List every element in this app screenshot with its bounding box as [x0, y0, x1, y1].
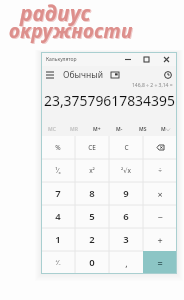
button[interactable]: Maximize — [137, 52, 156, 66]
button[interactable]: MC — [41, 122, 63, 136]
button[interactable]: M — [154, 122, 177, 136]
staticText: ¹⁄ₓ — [55, 166, 61, 175]
staticText: Калькулятор — [46, 56, 77, 63]
staticText: 146,8 ÷ 2 ÷ 3,14 = — [132, 82, 173, 89]
staticText: 3 — [123, 233, 129, 246]
staticText: C — [124, 143, 129, 152]
button[interactable]: × — [143, 182, 177, 205]
staticText: CE — [88, 143, 96, 152]
button[interactable]: ¹⁄ₓ — [41, 159, 75, 182]
staticText: M+ — [93, 126, 101, 133]
staticText: x² — [89, 166, 95, 175]
staticText: радиус — [21, 0, 92, 28]
button[interactable]: Menu — [41, 66, 59, 84]
button[interactable]: CE — [75, 136, 109, 159]
staticText: 7 — [55, 187, 61, 200]
button[interactable]: 5 — [75, 205, 109, 228]
button[interactable]: ²√x — [109, 159, 143, 182]
staticText: 4 — [55, 210, 61, 223]
staticText: − — [157, 211, 163, 223]
button[interactable]: − — [143, 205, 177, 228]
button[interactable]: C — [109, 136, 143, 159]
button[interactable]: = — [143, 251, 177, 274]
button[interactable]: M- — [108, 122, 131, 136]
button[interactable]: 9 — [109, 182, 143, 205]
staticText: = — [157, 257, 163, 269]
staticText: 6 — [123, 210, 129, 223]
staticText: ⁺⁄₋ — [55, 258, 61, 267]
staticText: ÷ — [158, 166, 162, 175]
staticText: 8 — [89, 187, 95, 200]
staticText: 5 — [89, 210, 95, 223]
staticText: × — [157, 188, 163, 200]
staticText: радиус — [20, 0, 91, 27]
staticText: окружности — [10, 19, 134, 45]
button[interactable]: 1 — [41, 228, 75, 251]
button[interactable]: ⁺⁄₋ — [41, 251, 75, 274]
button[interactable]: ÷ — [143, 159, 177, 182]
staticText: 2 — [89, 233, 95, 246]
button[interactable]: 8 — [75, 182, 109, 205]
button[interactable]: 2 — [75, 228, 109, 251]
staticText: Обычный — [63, 69, 103, 81]
button[interactable]: 7 — [41, 182, 75, 205]
staticText: 9 — [123, 187, 129, 200]
staticText: 0 — [89, 256, 95, 269]
button[interactable]: MS — [131, 122, 154, 136]
button[interactable]: 3 — [109, 228, 143, 251]
staticText: окружности — [9, 18, 133, 44]
button[interactable]: Close — [156, 52, 177, 66]
staticText: MS — [139, 126, 147, 133]
staticText: M- — [116, 126, 123, 133]
staticText: MC — [48, 126, 56, 133]
button[interactable]: 4 — [41, 205, 75, 228]
staticText: % — [55, 143, 61, 152]
staticText: M — [161, 126, 166, 133]
button[interactable]: 0 — [75, 251, 109, 274]
button[interactable]: Minimize — [118, 52, 137, 66]
staticText: , — [125, 257, 128, 269]
staticText: 23,37579617834395 — [44, 91, 175, 110]
button[interactable]: % — [41, 136, 75, 159]
button[interactable]: 6 — [109, 205, 143, 228]
button[interactable]: Backspace — [143, 136, 177, 159]
button[interactable]: , — [109, 251, 143, 274]
button[interactable]: History — [159, 66, 177, 84]
button[interactable]: x² — [75, 159, 109, 182]
button[interactable]: + — [143, 228, 177, 251]
staticText: ²√x — [121, 166, 131, 175]
button[interactable]: MR — [63, 122, 85, 136]
staticText: + — [157, 234, 163, 246]
button[interactable]: M+ — [85, 122, 108, 136]
staticText: 1 — [55, 233, 61, 246]
staticText: MR — [70, 126, 78, 133]
button[interactable]: Keep on top — [109, 69, 121, 81]
